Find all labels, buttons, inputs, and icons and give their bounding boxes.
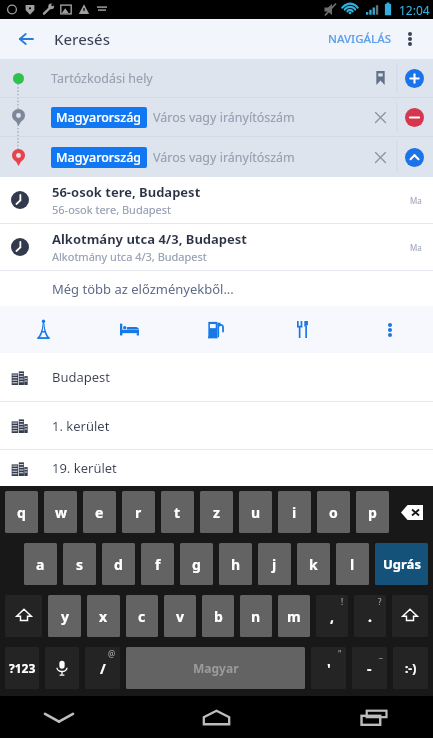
button[interactable]: . xyxy=(354,595,386,637)
button[interactable]: t xyxy=(161,491,194,533)
button[interactable]: Magyarország xyxy=(0,98,433,136)
button[interactable]: Add stop xyxy=(396,60,433,97)
staticText: 56-osok tere, Budapest xyxy=(52,183,201,201)
button[interactable]: Budapest xyxy=(0,353,433,401)
button[interactable]: Magyar xyxy=(126,647,305,689)
button[interactable]: j xyxy=(258,543,291,585)
button[interactable]: m xyxy=(278,595,310,637)
button[interactable]: x xyxy=(87,595,120,637)
button[interactable]: ' xyxy=(311,647,346,689)
button[interactable]: f xyxy=(141,543,174,585)
button[interactable]: i xyxy=(278,491,311,533)
staticText: , xyxy=(330,607,334,626)
staticText: n xyxy=(251,607,261,626)
button[interactable]: - xyxy=(352,647,387,689)
button[interactable]: Save xyxy=(364,62,396,94)
button[interactable]: y xyxy=(48,595,81,637)
button[interactable]: p xyxy=(356,491,389,533)
button[interactable]: Collapse xyxy=(396,139,433,176)
button[interactable]: s xyxy=(63,543,96,585)
button[interactable]: Voice input xyxy=(45,647,79,689)
staticText: f xyxy=(155,555,161,574)
button[interactable]: Clear xyxy=(364,141,396,173)
staticText: . xyxy=(368,607,372,626)
staticText: r xyxy=(135,503,142,522)
staticText: 19. kerület xyxy=(52,459,117,477)
button[interactable]: Alkotmány utca 4/3, Budapest xyxy=(0,224,433,270)
staticText: Ma xyxy=(410,195,422,206)
staticText: Budapest xyxy=(52,368,111,386)
staticText: b xyxy=(214,607,223,626)
button[interactable]: l xyxy=(336,543,369,585)
button[interactable]: Ugrás xyxy=(375,543,428,585)
button[interactable]: c xyxy=(126,595,158,637)
staticText: Ugrás xyxy=(383,555,421,573)
button[interactable]: / xyxy=(85,647,120,689)
staticText: Még több az előzményekből... xyxy=(52,280,234,298)
staticText: @ xyxy=(108,648,116,659)
staticText: p xyxy=(368,503,377,522)
staticText: x xyxy=(99,607,108,626)
staticText: ! xyxy=(341,596,344,607)
staticText: ' xyxy=(327,659,331,678)
staticText: k xyxy=(309,555,318,574)
button[interactable]: Restaurants xyxy=(259,306,346,353)
button[interactable]: b xyxy=(202,595,234,637)
button[interactable]: Shift xyxy=(392,595,428,637)
staticText: d xyxy=(114,555,123,574)
button[interactable]: a xyxy=(24,543,57,585)
button[interactable]: Magyarország xyxy=(0,137,433,177)
button[interactable]: Még több az előzményekből... xyxy=(0,271,433,306)
staticText: h xyxy=(231,555,241,574)
button[interactable]: q xyxy=(5,491,38,533)
staticText: / xyxy=(100,659,106,678)
button[interactable]: More options xyxy=(394,19,426,59)
button[interactable]: w xyxy=(44,491,77,533)
button[interactable]: g xyxy=(180,543,213,585)
staticText: 56-osok tere, Budapest xyxy=(52,202,172,217)
staticText: ?123 xyxy=(9,660,36,676)
button[interactable]: Tartózkodási hely xyxy=(0,59,433,97)
button[interactable]: , xyxy=(316,595,348,637)
button[interactable]: d xyxy=(102,543,135,585)
button[interactable]: 1. kerület xyxy=(0,402,433,449)
button[interactable]: e xyxy=(83,491,116,533)
staticText: z xyxy=(213,503,220,522)
button[interactable]: k xyxy=(297,543,330,585)
staticText: Tartózkodási hely xyxy=(51,70,153,87)
staticText: NAVIGÁLÁS xyxy=(328,31,392,47)
button[interactable]: v xyxy=(164,595,196,637)
button[interactable]: NAVIGÁLÁS xyxy=(321,21,394,57)
button[interactable]: Shift xyxy=(5,595,42,637)
button[interactable]: ?123 xyxy=(5,647,39,689)
button[interactable]: r xyxy=(122,491,155,533)
button[interactable]: Hide keyboard xyxy=(29,696,89,738)
staticText: i xyxy=(292,503,297,522)
staticText: :-) xyxy=(405,660,417,676)
button[interactable]: h xyxy=(219,543,252,585)
button[interactable]: Attractions xyxy=(0,306,86,353)
button[interactable]: z xyxy=(200,491,233,533)
staticText: o xyxy=(329,503,338,522)
button[interactable]: Backspace xyxy=(392,486,431,538)
button[interactable]: Recents xyxy=(344,696,404,738)
button[interactable]: More categories xyxy=(346,306,433,353)
staticText: v xyxy=(176,607,184,626)
button[interactable]: Clear xyxy=(364,101,396,133)
staticText: Magyarország xyxy=(56,109,142,126)
button[interactable]: Home xyxy=(186,696,246,738)
button[interactable]: 56-osok tere, Budapest xyxy=(0,177,433,223)
staticText: Magyarország xyxy=(56,149,142,166)
button[interactable]: Hotels xyxy=(86,306,172,353)
button[interactable]: Back xyxy=(0,19,44,59)
button[interactable]: n xyxy=(240,595,272,637)
button[interactable]: o xyxy=(317,491,350,533)
button[interactable]: u xyxy=(239,491,272,533)
staticText: Alkotmány utca 4/3, Budapest xyxy=(52,230,247,248)
staticText: l xyxy=(350,555,355,574)
button[interactable]: :-) xyxy=(393,647,428,689)
button[interactable]: Remove stop xyxy=(396,99,433,136)
button[interactable]: 19. kerület xyxy=(0,450,433,486)
staticText: Város vagy irányítószám xyxy=(153,109,295,126)
button[interactable]: Gas stations xyxy=(172,306,259,353)
